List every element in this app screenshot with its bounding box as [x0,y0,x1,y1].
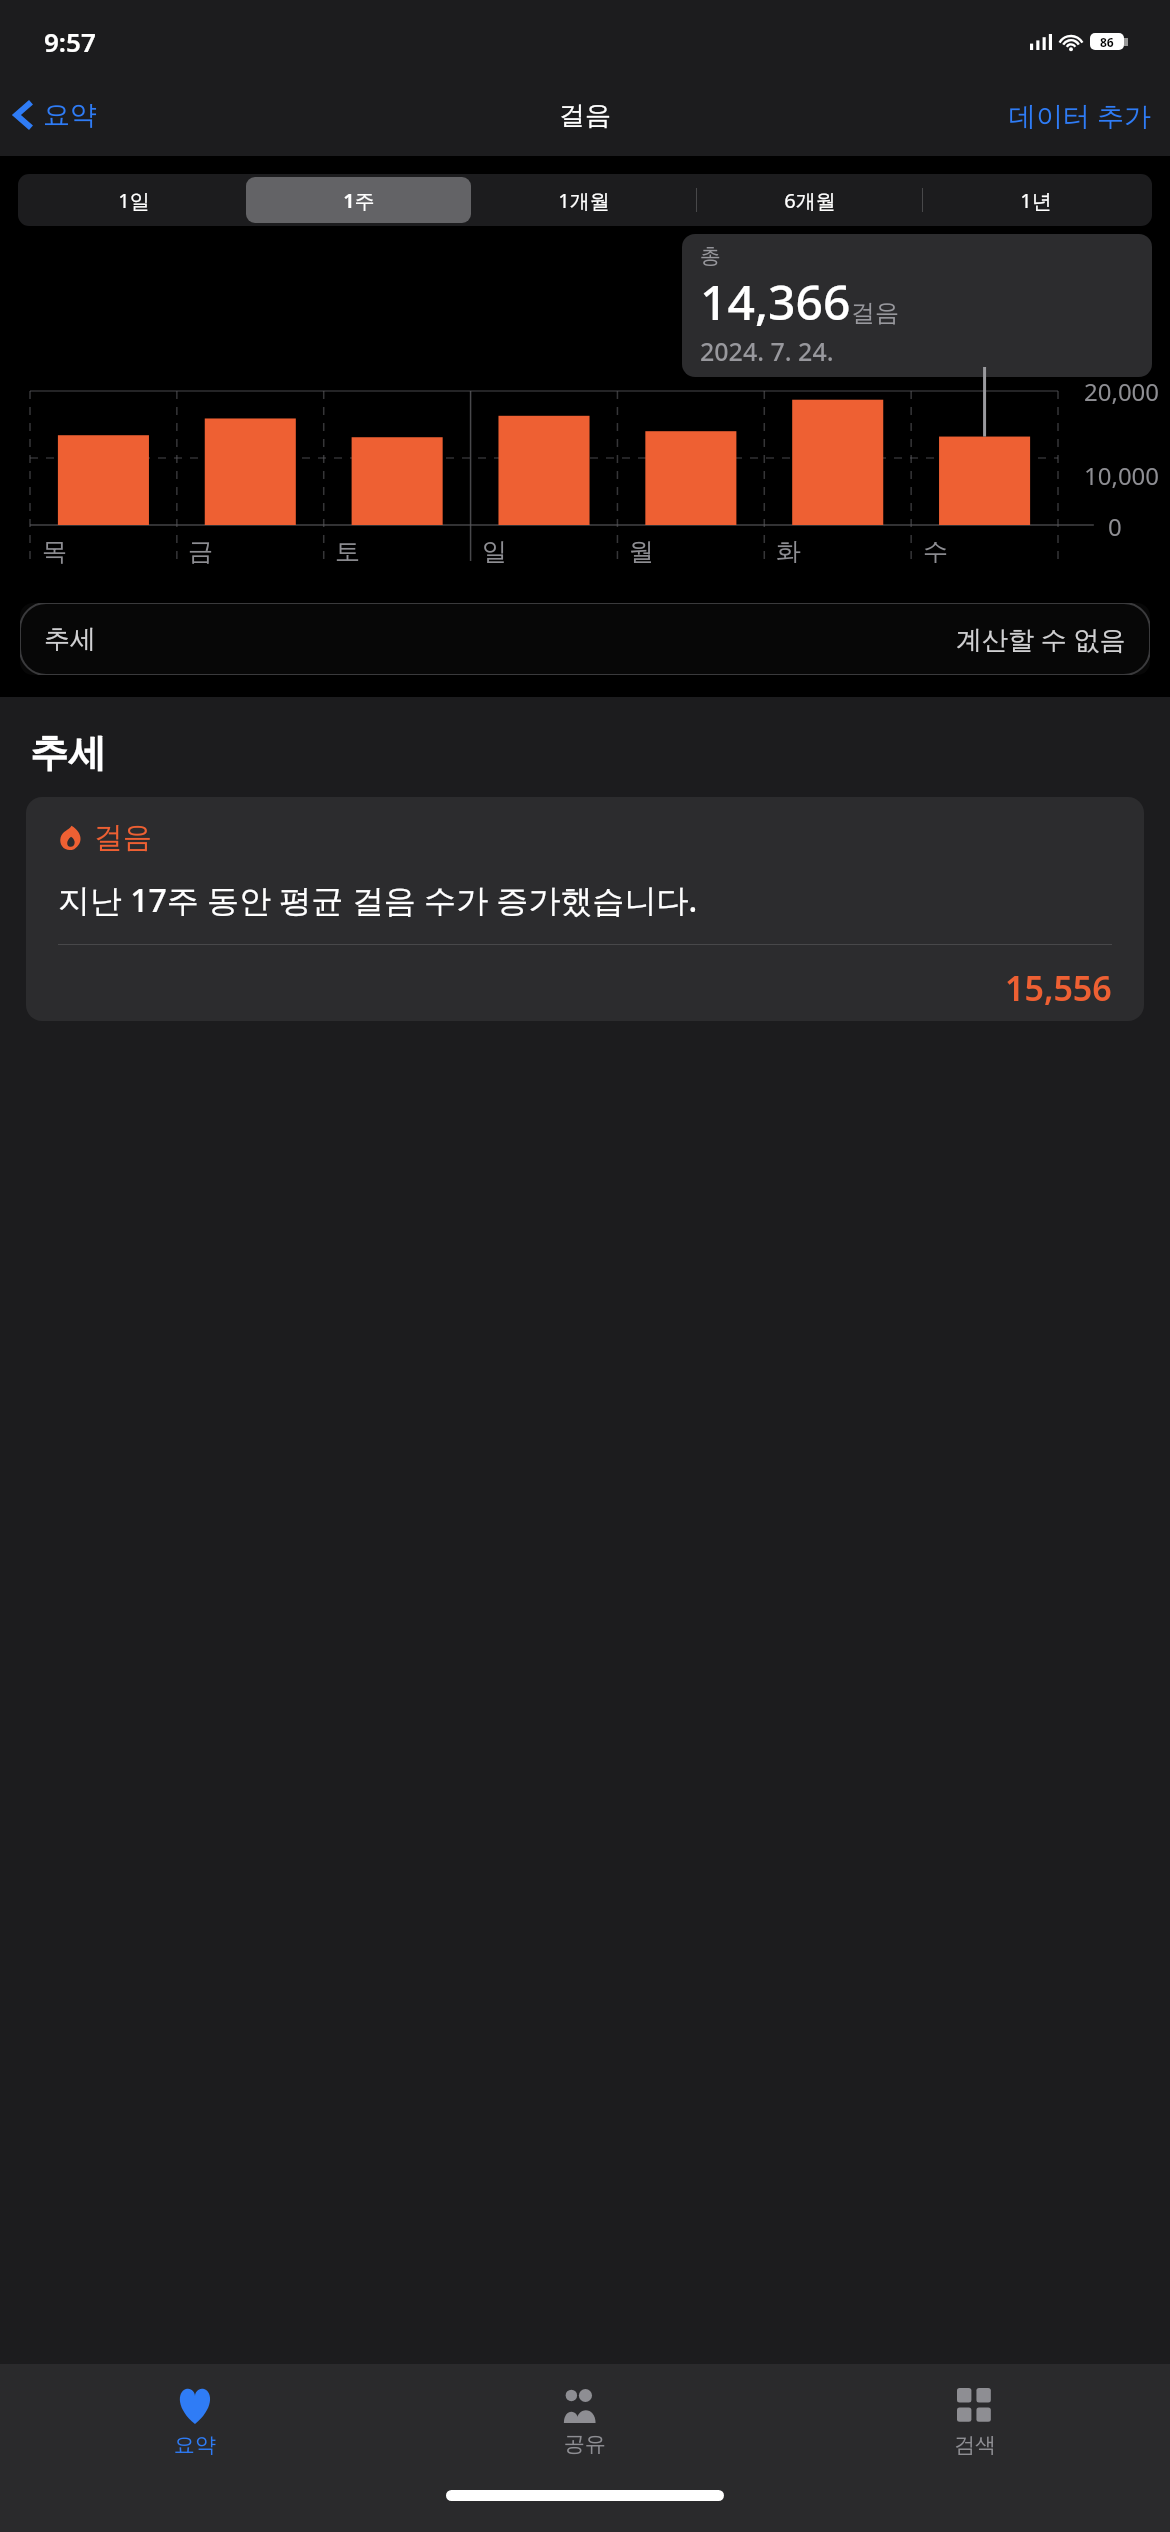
button[interactable]: 추세 [20,603,1150,675]
staticText: 1년 [1020,187,1052,214]
button[interactable]: 1일 [21,177,246,223]
other: 요약 [176,2388,214,2424]
staticText: 14,366 [700,269,851,334]
button[interactable]: 걸음 [26,797,1144,1021]
staticText: 15,556 [1005,965,1112,1011]
staticText: 월 [629,536,654,567]
staticText: 걸음 [851,298,899,328]
button[interactable]: 1주 [246,177,471,223]
staticText: 2024. 7. 24. [700,334,834,368]
staticText: 공유 [564,2431,606,2457]
staticText: 걸음 [94,819,152,856]
staticText: 86 [1100,34,1114,50]
staticText: 걸음 [559,99,611,132]
staticText: 추세 [44,623,96,656]
staticText: 추세 [30,729,106,777]
button[interactable]: 요약 [0,92,109,138]
button[interactable]: 6개월 [697,177,923,223]
staticText: 검색 [954,2432,996,2458]
staticText: 1주 [343,187,375,214]
staticText: 10,000 [1084,459,1160,492]
staticText: 토 [335,536,360,567]
button[interactable]: 요약 [0,2364,390,2482]
staticText: 0 [1108,510,1122,543]
staticText: 1개월 [558,187,610,214]
staticText: 지난 17주 동안 평균 걸음 수가 증가했습니다. [58,878,698,922]
staticText: 요약 [174,2432,216,2458]
button[interactable]: 공유 [390,2364,780,2482]
staticText: 요약 [43,98,97,132]
button[interactable]: 검색 [780,2364,1170,2482]
staticText: 20,000 [1084,375,1160,408]
staticText: 데이터 추가 [1009,97,1152,134]
staticText: 1일 [118,187,150,214]
staticText: 화 [776,536,801,567]
button[interactable]: 1개월 [471,177,697,223]
staticText: 6개월 [784,187,836,214]
staticText: 수 [923,536,948,567]
other: 공유 [563,2389,607,2423]
staticText: 9:57 [44,24,96,59]
button[interactable]: 데이터 추가 [991,89,1170,142]
other: 검색 [957,2388,993,2424]
staticText: 총 [700,243,721,269]
staticText: 금 [188,536,213,567]
staticText: 계산할 수 없음 [956,621,1126,657]
staticText: 목 [42,536,67,567]
staticText: 일 [482,536,507,567]
button[interactable]: 1년 [923,177,1149,223]
